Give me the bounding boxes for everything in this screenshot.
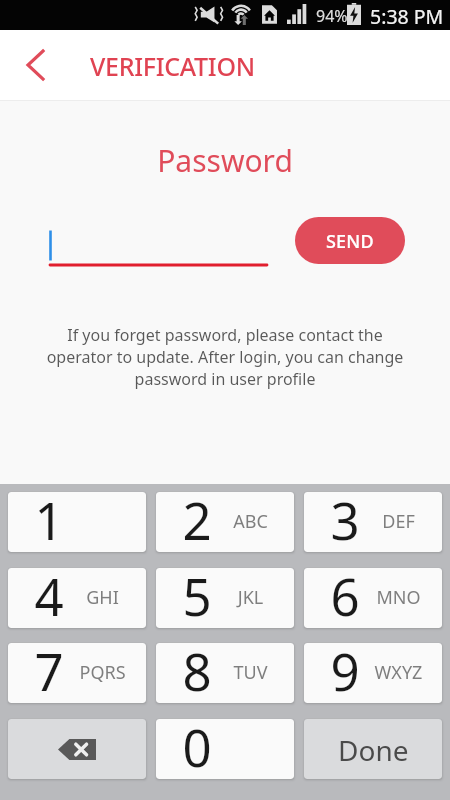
staticText: 4 — [33, 568, 65, 621]
staticText: Done — [338, 731, 409, 769]
button[interactable]: 3 — [304, 492, 442, 552]
staticText: If you forget password, please contact t… — [45, 324, 405, 390]
staticText: 3 — [329, 492, 361, 545]
button[interactable]: 1 — [8, 492, 146, 552]
button[interactable]: 4 — [8, 568, 146, 628]
staticText: WXYZ — [366, 660, 431, 685]
button[interactable]: Done — [304, 719, 442, 779]
staticText: 2 — [181, 492, 213, 545]
staticText: SEND — [326, 229, 374, 254]
staticText: PQRS — [70, 660, 135, 685]
staticText: ABC — [218, 509, 283, 534]
staticText: DEF — [366, 509, 431, 534]
staticText: 5:38 PM — [370, 3, 444, 30]
button[interactable]: 5 — [156, 568, 294, 628]
button[interactable]: 8 — [156, 643, 294, 703]
button[interactable]: 9 — [304, 643, 442, 703]
staticText: 1 — [33, 492, 65, 545]
staticText: 94% — [316, 5, 348, 27]
staticText: Password — [0, 140, 450, 181]
staticText: 0 — [181, 719, 213, 772]
staticText: VERIFICATION — [90, 49, 255, 83]
button[interactable]: SEND — [295, 217, 405, 264]
button[interactable]: Backspace — [8, 719, 146, 779]
button[interactable]: Password input field — [44, 220, 274, 268]
button[interactable]: 6 — [304, 568, 442, 628]
staticText: 9 — [329, 643, 361, 696]
button[interactable]: Back — [17, 47, 53, 83]
button[interactable]: 7 — [8, 643, 146, 703]
staticText: MNO — [366, 585, 431, 610]
button[interactable]: 0 — [156, 719, 294, 779]
staticText: 8 — [181, 643, 213, 696]
staticText: GHI — [70, 585, 135, 610]
staticText: 6 — [329, 568, 361, 621]
button[interactable]: 2 — [156, 492, 294, 552]
staticText: TUV — [218, 660, 283, 685]
staticText: 5 — [181, 568, 213, 621]
staticText: JKL — [218, 585, 283, 610]
staticText: 7 — [33, 643, 65, 696]
